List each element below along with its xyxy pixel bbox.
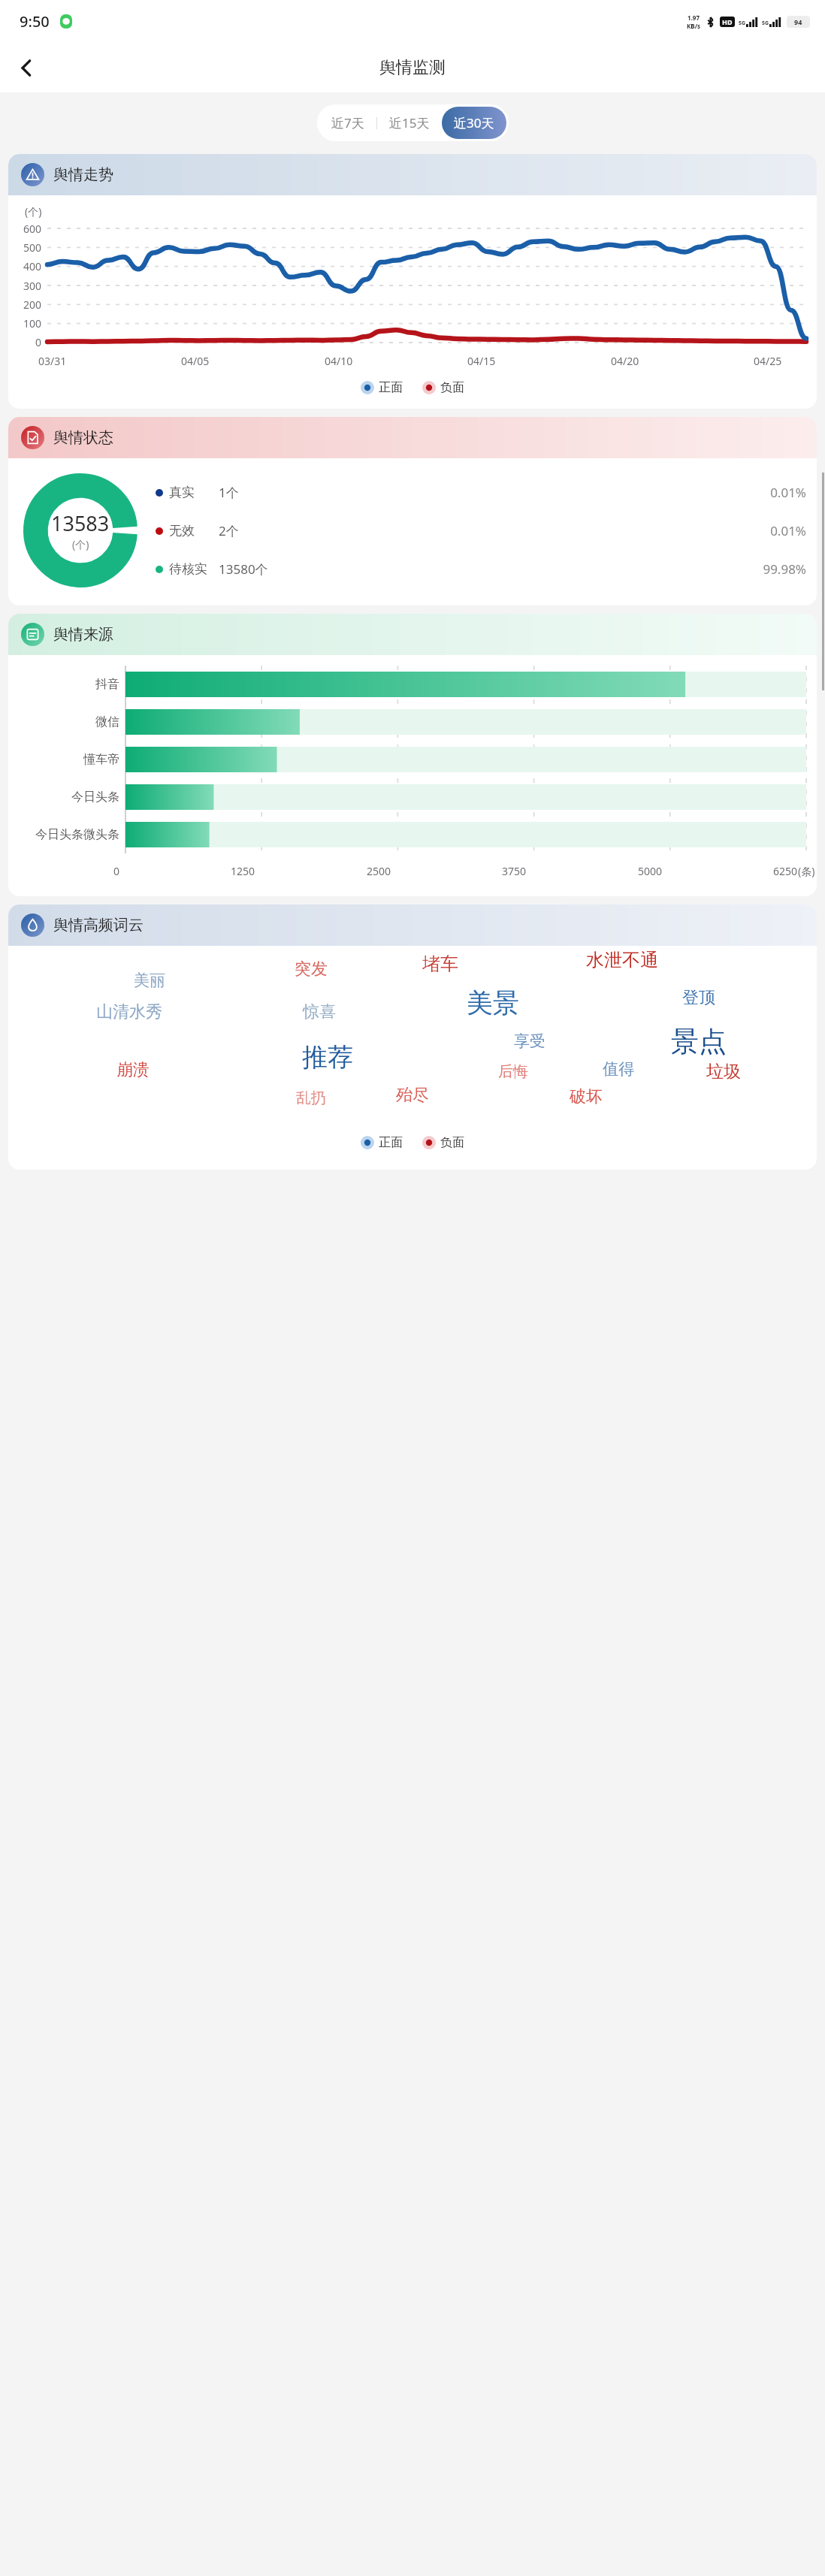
staticText: 6250: [773, 864, 798, 878]
staticText: 04/05: [181, 354, 210, 368]
staticText: 后悔: [498, 1062, 528, 1081]
staticText: (条): [798, 864, 815, 878]
staticText: 99.98%: [283, 560, 806, 578]
staticText: 殆尽: [396, 1085, 429, 1106]
staticText: 垃圾: [706, 1061, 741, 1083]
button[interactable]: 近15天: [377, 107, 442, 139]
staticText: 04/25: [754, 354, 782, 368]
staticText: 无效: [169, 523, 219, 539]
staticText: 破坏: [570, 1086, 603, 1107]
staticText: 0.01%: [283, 522, 806, 539]
staticText: 美景: [467, 986, 519, 1019]
staticText: 真实: [169, 485, 219, 500]
staticText: 舆情走势: [53, 165, 113, 184]
staticText: 负面: [440, 380, 464, 395]
staticText: 景点: [671, 1024, 727, 1059]
staticText: 04/15: [467, 354, 496, 368]
staticText: 美丽: [134, 971, 165, 990]
staticText: 水泄不通: [586, 949, 658, 971]
staticText: 今日头条微头条: [8, 827, 119, 842]
staticText: 抖音: [8, 677, 119, 692]
staticText: 5G: [762, 20, 769, 27]
staticText: 04/10: [325, 354, 353, 368]
staticText: KB/s: [687, 22, 700, 30]
staticText: 400: [23, 259, 42, 273]
staticText: 登顶: [682, 987, 715, 1008]
staticText: 待核实: [169, 561, 219, 577]
staticText: 1250: [231, 864, 255, 878]
staticText: (个): [72, 537, 89, 551]
staticText: 13583: [51, 509, 110, 537]
staticText: 山清水秀: [96, 1001, 162, 1022]
staticText: 舆情监测: [379, 57, 446, 78]
staticText: (个): [25, 204, 42, 219]
staticText: 5000: [638, 864, 663, 878]
staticText: 3750: [502, 864, 527, 878]
staticText: 2个: [219, 522, 283, 539]
staticText: 正面: [379, 1135, 403, 1150]
staticText: 近15天: [389, 114, 430, 131]
staticText: 1.97: [687, 14, 700, 22]
staticText: 负面: [440, 1135, 464, 1150]
staticText: 500: [23, 240, 42, 255]
staticText: 享受: [514, 1031, 545, 1051]
staticText: 04/20: [611, 354, 639, 368]
staticText: 舆情状态: [53, 428, 113, 447]
staticText: 推荐: [302, 1041, 353, 1074]
staticText: 突发: [295, 959, 328, 980]
staticText: 乱扔: [296, 1089, 326, 1107]
staticText: 舆情高频词云: [53, 916, 144, 935]
staticText: 崩溃: [116, 1059, 150, 1080]
staticText: 值得: [603, 1059, 634, 1079]
staticText: 94: [794, 17, 802, 26]
staticText: 0: [35, 335, 42, 349]
staticText: 1个: [219, 484, 283, 501]
staticText: HD: [722, 17, 733, 26]
staticText: 2500: [367, 864, 391, 878]
staticText: 600: [23, 222, 42, 236]
staticText: 5G: [739, 20, 746, 27]
staticText: 200: [23, 297, 42, 312]
staticText: 近7天: [331, 114, 364, 131]
staticText: 正面: [379, 380, 403, 395]
staticText: 懂车帝: [8, 752, 119, 767]
button[interactable]: 近30天: [442, 107, 506, 139]
button[interactable]: 近7天: [319, 107, 376, 139]
staticText: 惊喜: [303, 1001, 336, 1022]
staticText: 微信: [8, 714, 119, 729]
staticText: 13580个: [219, 560, 283, 578]
staticText: 近30天: [454, 114, 494, 131]
staticText: 100: [23, 316, 42, 331]
staticText: 堵车: [422, 953, 458, 975]
button[interactable]: Back: [8, 49, 45, 86]
staticText: 300: [23, 279, 42, 293]
staticText: 9:50: [20, 11, 50, 32]
staticText: 0.01%: [283, 484, 806, 501]
staticText: 舆情来源: [53, 625, 113, 644]
staticText: 03/31: [38, 354, 67, 368]
staticText: 0: [113, 864, 120, 878]
staticText: 今日头条: [8, 790, 119, 805]
